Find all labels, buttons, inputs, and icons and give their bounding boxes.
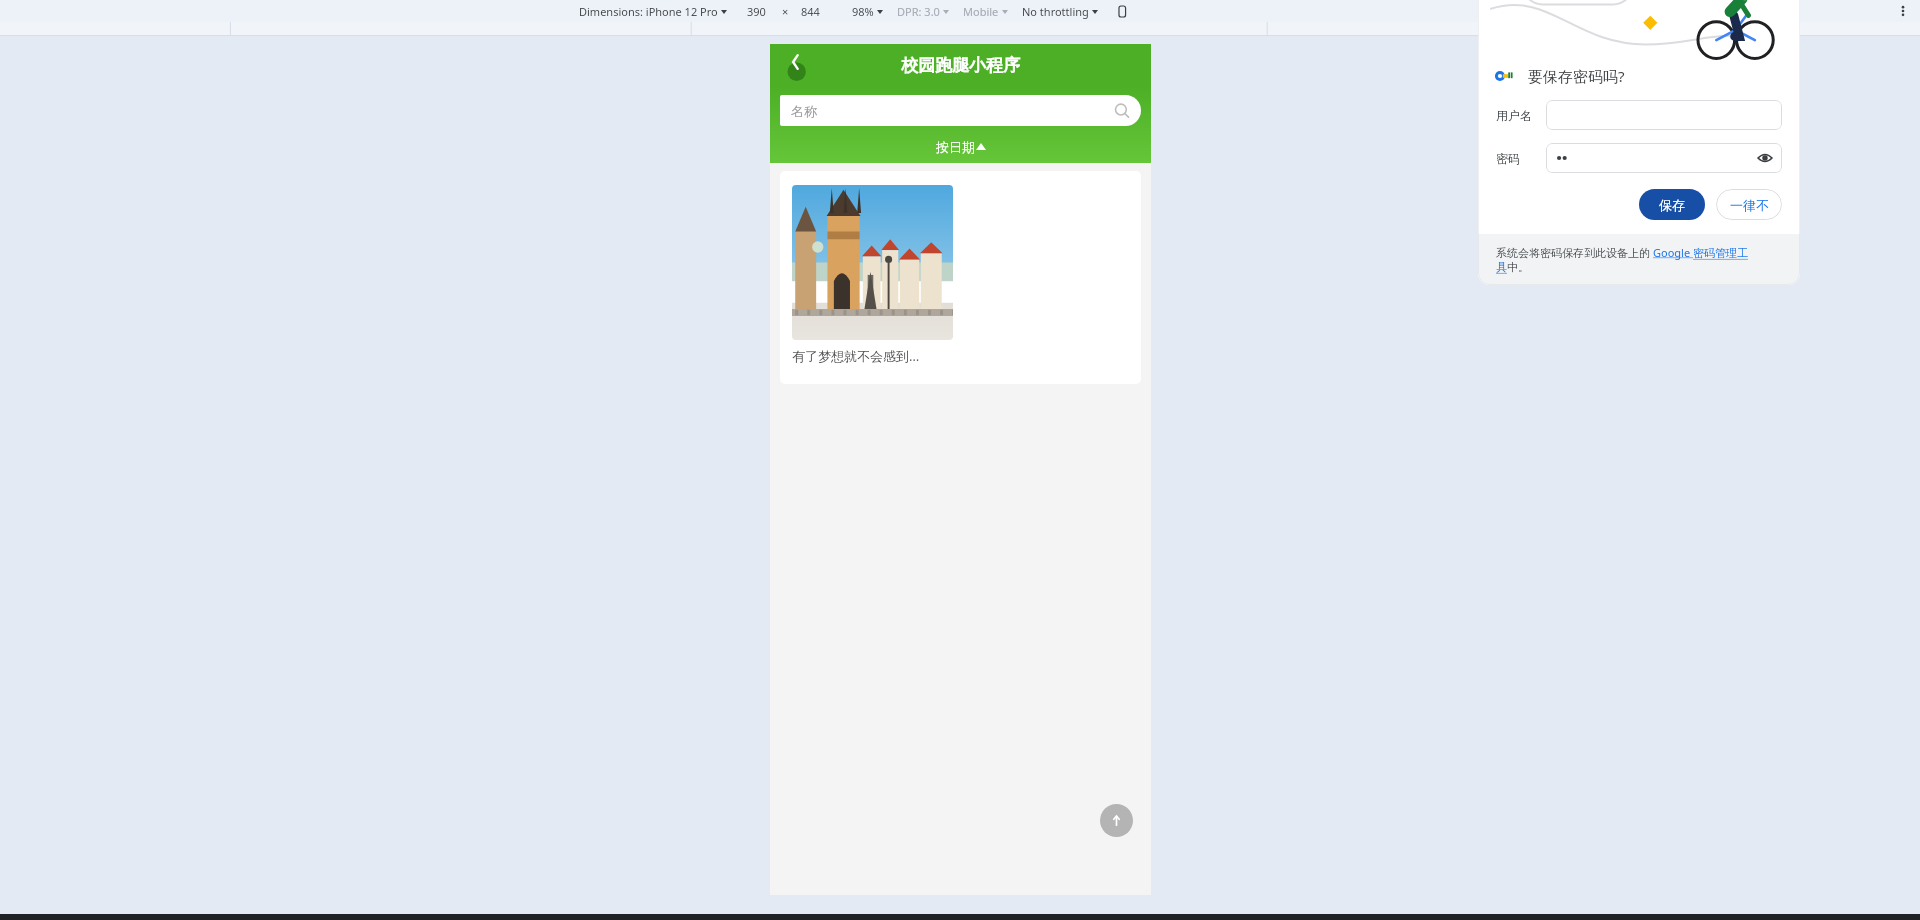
staticText: 844 [801, 4, 820, 19]
button[interactable]: Search [1106, 95, 1137, 126]
staticText: 名称 [791, 103, 817, 119]
staticText: 密码 [1496, 151, 1520, 166]
button[interactable]: 一律不 [1716, 189, 1782, 220]
staticText: 用户名 [1496, 108, 1532, 123]
button[interactable]: 保存 [1639, 189, 1705, 220]
staticText: 按日期 [936, 139, 975, 155]
button[interactable]: DPR: 3.0 [896, 4, 950, 19]
staticText: Mobile [963, 4, 999, 19]
button[interactable]: Show password [1546, 143, 1782, 173]
button[interactable]: Rotate [1113, 2, 1131, 20]
staticText: 要保存密码吗? [1528, 66, 1625, 86]
button[interactable]: Dimensions: iPhone 12 Pro [578, 4, 728, 19]
button[interactable]: 名称 [780, 95, 1141, 126]
button[interactable]: 844 [800, 4, 821, 19]
staticText: 390 [747, 4, 766, 19]
button[interactable] [1546, 100, 1782, 130]
button[interactable]: 按日期 [930, 137, 992, 157]
staticText: 一律不 [1730, 197, 1769, 213]
button[interactable]: Mobile [962, 4, 1009, 19]
staticText: Google 密码管理工 [1653, 245, 1748, 260]
staticText: × [782, 4, 789, 19]
staticText: DPR: 3.0 [897, 4, 940, 19]
staticText: 校园跑腿小程序 [901, 55, 1020, 76]
staticText: 保存 [1659, 197, 1685, 213]
button[interactable]: 有了梦想就不会感到… [780, 171, 1141, 384]
button[interactable]: Scroll to top [1100, 804, 1133, 837]
button[interactable]: No throttling [1021, 4, 1099, 19]
button[interactable]: 390 [746, 4, 767, 19]
staticText: 98% [852, 4, 874, 19]
staticText: 具 [1496, 260, 1507, 274]
staticText: No throttling [1022, 4, 1089, 19]
button[interactable]: × [781, 4, 790, 19]
button[interactable]: Google 密码管理工 [1653, 245, 1748, 260]
staticText: 系统会将密码保存到此设备上的 [1496, 245, 1653, 260]
staticText: 中。 [1507, 260, 1529, 274]
button[interactable]: More options [1894, 2, 1912, 20]
staticText: Dimensions: iPhone 12 Pro [579, 4, 718, 19]
button[interactable]: 具 [1496, 260, 1507, 274]
staticText: 有了梦想就不会感到… [792, 347, 920, 365]
button[interactable]: 98% [851, 4, 884, 19]
button[interactable]: Back [778, 48, 812, 82]
button[interactable]: Show password [1752, 145, 1778, 171]
